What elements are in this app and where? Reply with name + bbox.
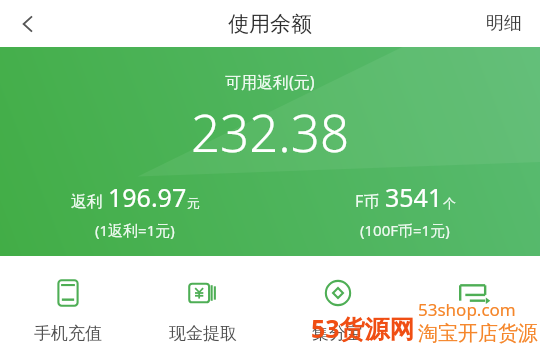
button[interactable]: 手机充值 [0,268,135,350]
staticText: 元 [187,195,200,211]
staticText: F币 [355,190,380,212]
button[interactable]: 明细 [468,0,540,47]
staticText: 明细 [486,12,522,35]
staticText: 196.97 [108,180,187,214]
staticText: 淘宝开店货源 [418,321,538,346]
button[interactable]: Back [0,0,56,47]
staticText: 53shop.com [418,298,516,321]
staticText: (1返利=1元) [95,220,175,240]
staticText: 个 [443,195,456,211]
staticText: 现金提取 [169,323,237,344]
staticText: 手机充值 [34,323,102,344]
staticText: (100F币=1元) [360,220,450,240]
button[interactable]: 现金提取 [135,268,270,350]
staticText: 232.38 [191,97,350,166]
button[interactable]: 集分宝 [270,268,405,350]
staticText: 返利 [71,192,103,212]
staticText: 使用余额 [228,11,312,37]
staticText: 3541 [385,180,443,214]
staticText: 可用返利(元) [225,71,315,93]
staticText: 53货源网 [311,311,415,345]
button[interactable]: Transfer [405,268,540,352]
staticText: 集分宝 [312,323,363,344]
